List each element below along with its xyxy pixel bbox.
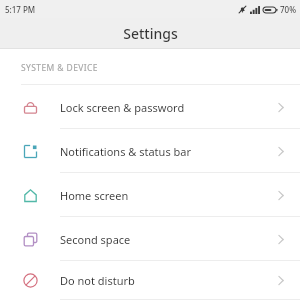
staticText: Do not disturb <box>60 273 135 288</box>
button[interactable]: Second space <box>0 217 300 261</box>
staticText: Home screen <box>60 188 129 203</box>
button[interactable]: Do not disturb <box>0 261 300 300</box>
button[interactable]: Home screen <box>0 173 300 217</box>
button[interactable]: Lock screen & password <box>0 85 300 129</box>
staticText: 5:17 PM <box>5 4 36 15</box>
staticText: Notifications & status bar <box>60 144 191 159</box>
staticText: Second space <box>60 232 131 247</box>
staticText: Settings <box>123 24 178 43</box>
staticText: SYSTEM & DEVICE <box>21 62 98 74</box>
button[interactable]: Notifications & status bar <box>0 129 300 173</box>
staticText: Lock screen & password <box>60 100 185 115</box>
staticText: 70% <box>280 4 296 15</box>
